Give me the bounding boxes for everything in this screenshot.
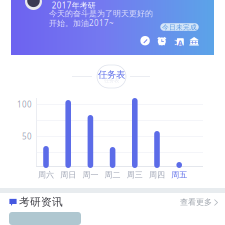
staticText: 周四 — [149, 170, 165, 178]
staticText: 周日 — [60, 170, 76, 178]
staticText: 开始。加油2017~ — [49, 18, 114, 25]
staticText: 文 — [174, 38, 179, 45]
button[interactable]: 院校 — [189, 36, 199, 45]
button[interactable]: 写日记 — [140, 36, 150, 45]
staticText: 任务表 — [98, 69, 125, 78]
staticText: A — [177, 38, 183, 45]
staticText: 50 — [22, 131, 32, 142]
staticText: 任务表 — [104, 77, 119, 84]
staticText: 100 — [17, 99, 32, 110]
staticText: 考研资讯 — [19, 195, 63, 208]
button[interactable]: 考研资讯 — [0, 194, 225, 211]
button[interactable]: 闹钟 — [157, 36, 167, 45]
staticText: 今天的奋斗是为了明天更好的 — [49, 9, 153, 16]
staticText: 今日未完成 — [162, 23, 197, 31]
staticText: 周一 — [82, 170, 98, 178]
button[interactable]: 翻译 — [174, 37, 181, 44]
staticText: 周三 — [127, 170, 143, 178]
staticText: 周二 — [105, 170, 121, 178]
staticText: 周五 — [171, 170, 187, 178]
staticText: 周六 — [38, 170, 54, 178]
staticText: 查看更多 — [180, 197, 212, 207]
staticText: 2017年考研 — [52, 0, 96, 7]
